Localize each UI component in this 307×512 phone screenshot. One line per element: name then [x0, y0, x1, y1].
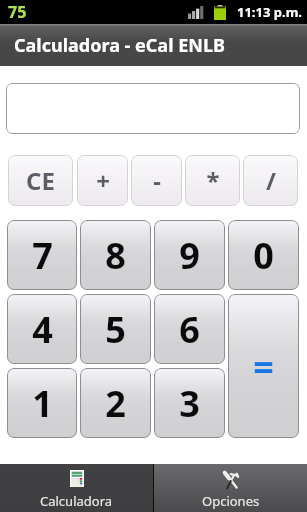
staticText: - — [153, 164, 161, 197]
button[interactable]: 5 — [80, 294, 151, 364]
staticText: 6 — [179, 305, 200, 354]
button[interactable]: 2 — [80, 368, 151, 438]
staticText: = — [253, 342, 274, 391]
button[interactable]: / — [243, 155, 298, 206]
button[interactable] — [6, 83, 300, 134]
button[interactable]: - — [131, 155, 182, 206]
staticText: / — [266, 164, 276, 197]
staticText: * — [206, 164, 220, 197]
staticText: + — [96, 164, 110, 197]
staticText: 2 — [105, 379, 126, 428]
staticText: 0 — [253, 231, 274, 280]
staticText: 7 — [32, 231, 53, 280]
button[interactable]: 8 — [80, 220, 151, 290]
button[interactable]: Opciones — [154, 464, 307, 512]
button[interactable]: CE — [8, 155, 73, 206]
staticText: CE — [26, 164, 55, 197]
staticText: 75 — [8, 1, 27, 23]
button[interactable]: = — [228, 294, 299, 438]
staticText: 4 — [32, 305, 53, 354]
staticText: 3 — [179, 379, 200, 428]
other: Calculadora — [70, 470, 84, 487]
other: Opciones — [222, 470, 239, 489]
staticText: 1 — [32, 379, 53, 428]
button[interactable]: 0 — [228, 220, 299, 290]
staticText: Calculadora - eCal ENLB — [14, 33, 225, 58]
button[interactable]: 6 — [154, 294, 225, 364]
button[interactable]: 3 — [154, 368, 225, 438]
staticText: Opciones — [202, 492, 260, 510]
staticText: 11:13 p.m. — [237, 3, 302, 21]
button[interactable]: * — [185, 155, 240, 206]
button[interactable]: + — [77, 155, 128, 206]
staticText: 5 — [105, 305, 126, 354]
staticText: Calculadora — [40, 492, 113, 510]
button[interactable]: 7 — [7, 220, 77, 290]
staticText: 9 — [179, 231, 200, 280]
button[interactable]: 9 — [154, 220, 225, 290]
staticText: 8 — [105, 231, 126, 280]
button[interactable]: 4 — [7, 294, 77, 364]
button[interactable]: 1 — [7, 368, 77, 438]
button[interactable]: Calculadora — [0, 464, 153, 512]
